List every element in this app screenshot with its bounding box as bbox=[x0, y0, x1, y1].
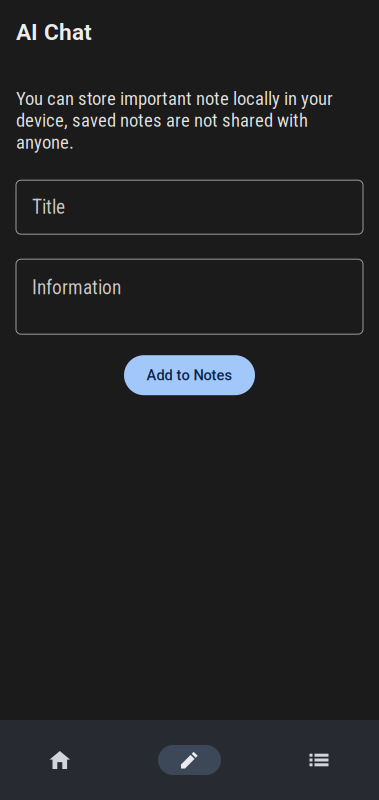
staticText: Add to Notes bbox=[146, 367, 232, 384]
button[interactable]: Compose note bbox=[129, 720, 249, 800]
button[interactable]: Home bbox=[0, 720, 120, 800]
button[interactable]: Add to Notes bbox=[124, 355, 255, 395]
button[interactable]: Notes bbox=[259, 720, 379, 800]
button[interactable]: Information bbox=[16, 259, 363, 334]
staticText: AI Chat bbox=[16, 19, 92, 46]
staticText: Title bbox=[32, 196, 65, 219]
button[interactable]: Title bbox=[16, 180, 363, 234]
staticText: Information bbox=[32, 276, 121, 299]
staticText: You can store important note locally in … bbox=[16, 88, 333, 153]
